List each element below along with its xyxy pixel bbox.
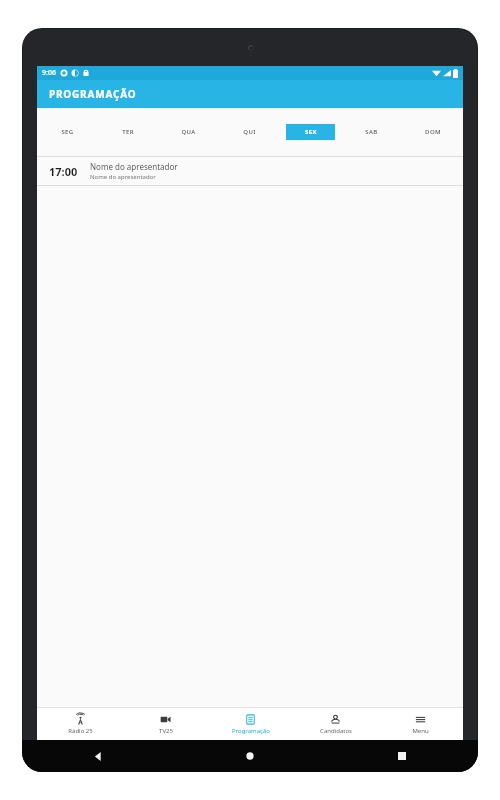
button[interactable]: SAB	[341, 108, 402, 156]
button[interactable]: TER	[97, 108, 158, 156]
staticText: Rádio 25	[68, 727, 93, 735]
button[interactable]: Home	[174, 740, 326, 772]
staticText: TV25	[159, 727, 173, 735]
staticText: SEX	[305, 128, 317, 136]
button[interactable]: SEG	[37, 108, 97, 156]
staticText: QUA	[181, 128, 196, 136]
staticText: DOM	[425, 128, 441, 136]
button[interactable]: Menu	[378, 708, 463, 740]
button[interactable]: DOM	[402, 108, 463, 156]
staticText: Menu	[412, 727, 429, 735]
staticText: Nome do apresentador	[90, 161, 178, 172]
staticText: 9:06	[42, 68, 56, 78]
staticText: 17:00	[49, 164, 78, 179]
staticText: SEG	[61, 128, 74, 136]
staticText: Candidatos	[320, 727, 352, 735]
staticText: PROGRAMAÇÃO	[49, 87, 137, 101]
staticText: SAB	[365, 128, 378, 136]
button[interactable]: Candidatos	[293, 708, 378, 740]
button[interactable]: Back	[22, 740, 174, 772]
staticText: Nome do apresentador	[90, 173, 156, 181]
button[interactable]: 17:00	[37, 157, 463, 185]
button[interactable]: QUA	[158, 108, 219, 156]
button[interactable]: Programação	[208, 708, 293, 740]
staticText: Programação	[232, 727, 270, 735]
button[interactable]: Recent apps	[326, 740, 478, 772]
staticText: QUI	[243, 128, 256, 136]
button[interactable]: QUI	[219, 108, 280, 156]
button[interactable]: TV25	[123, 708, 208, 740]
button[interactable]: SEX	[280, 108, 341, 156]
button[interactable]: Rádio 25	[37, 708, 123, 740]
staticText: TER	[122, 128, 134, 136]
